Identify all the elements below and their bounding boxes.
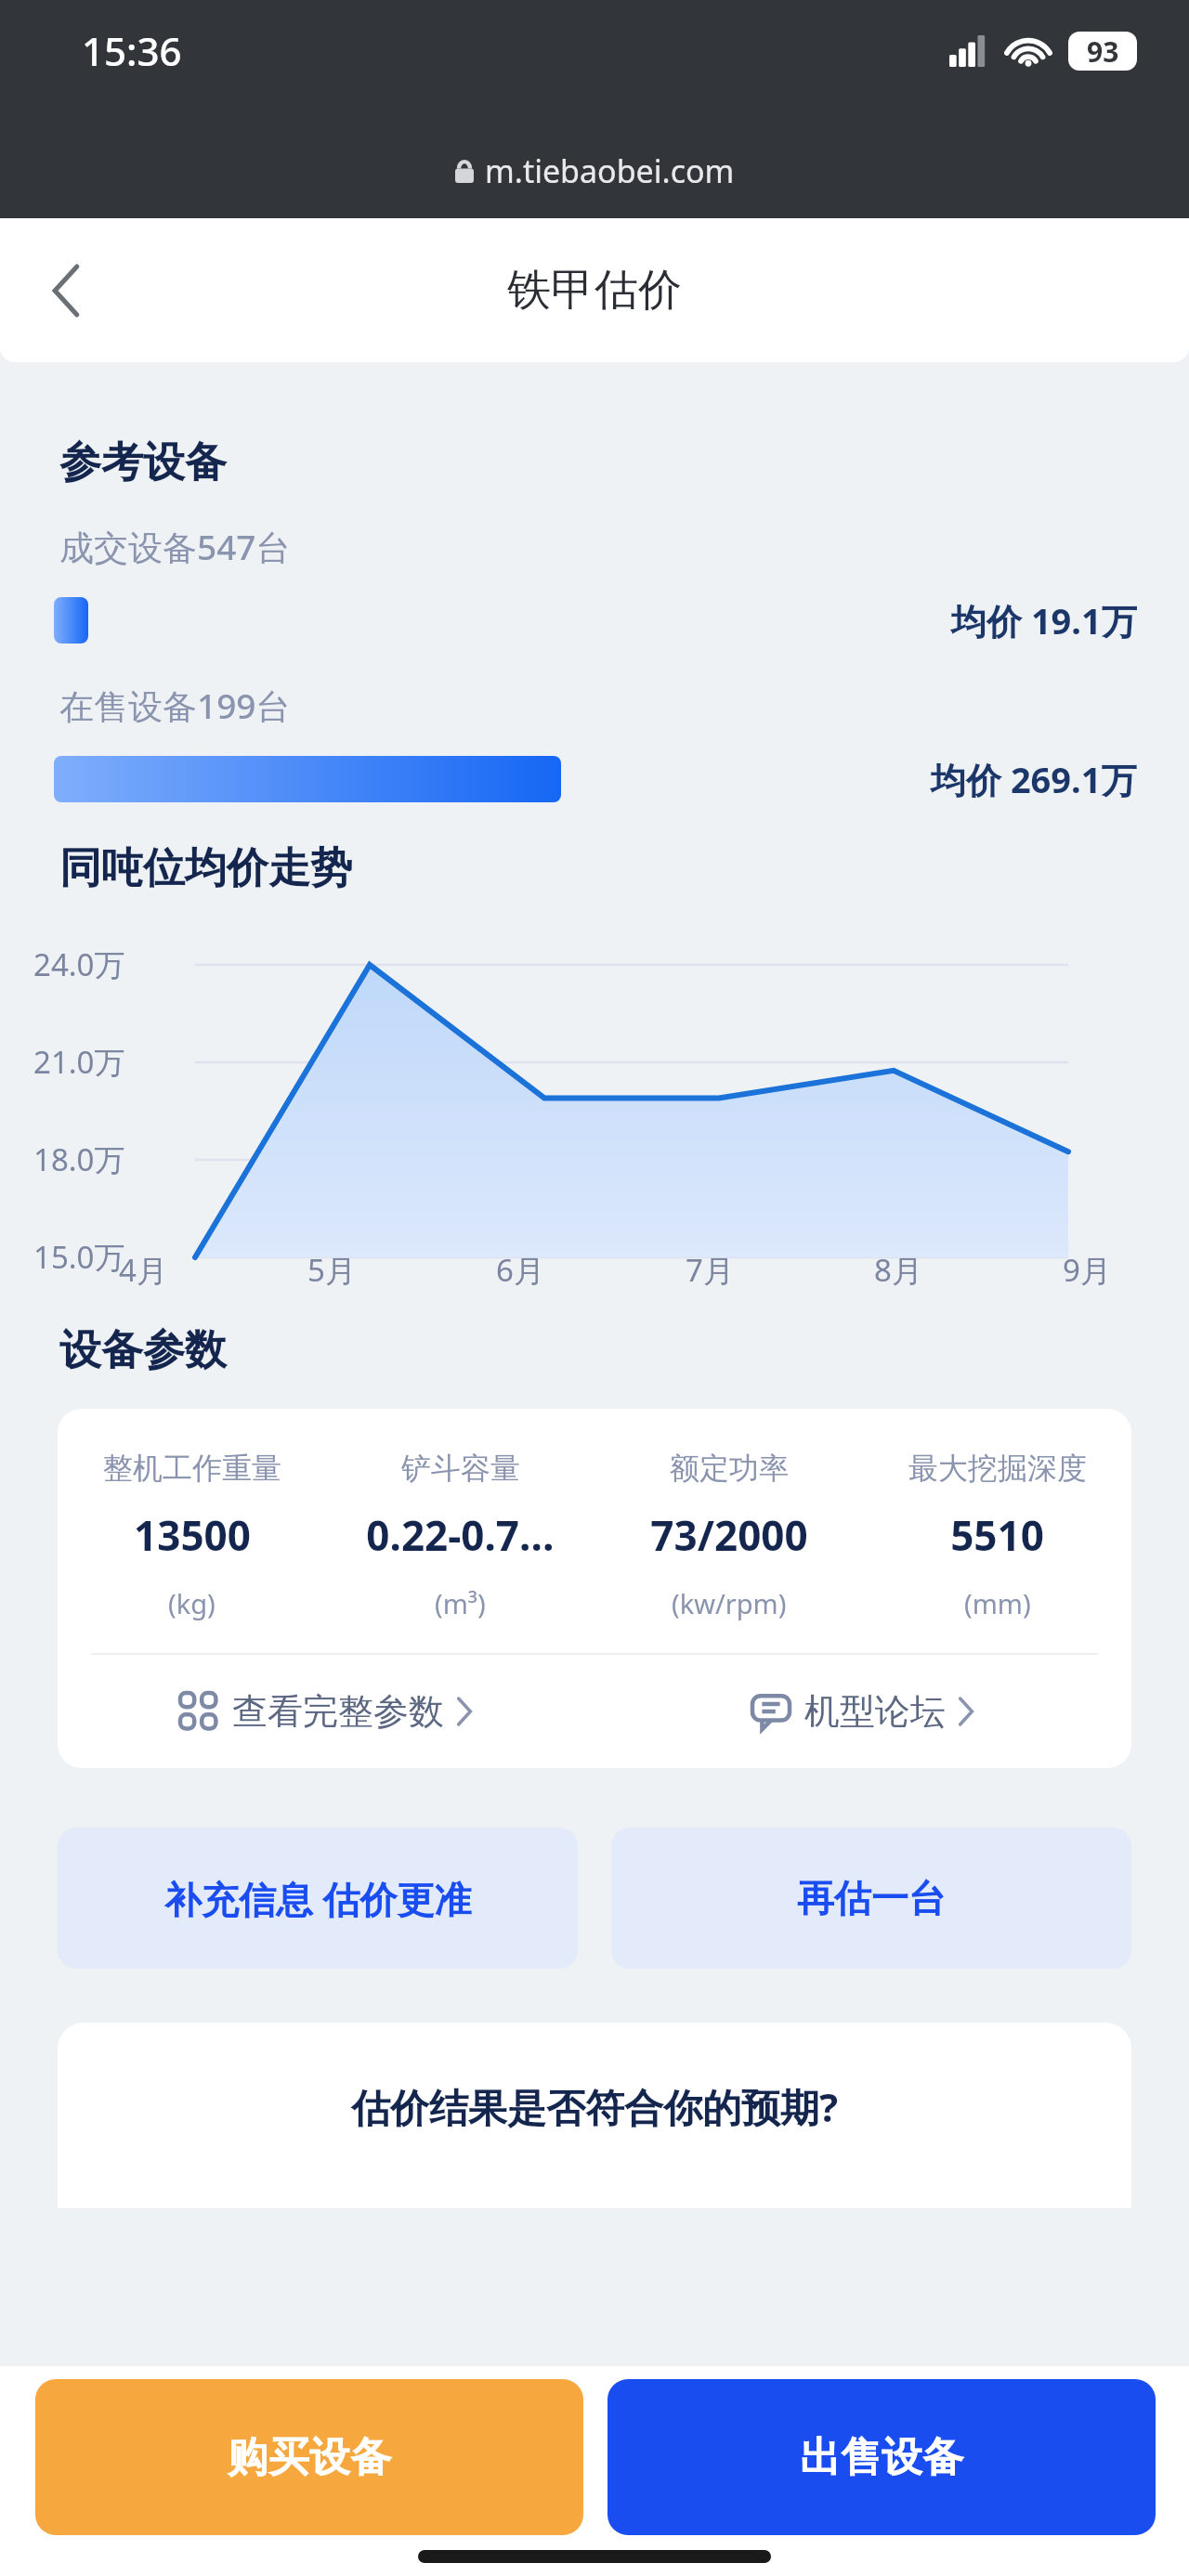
staticText: 估价结果是否符合你的预期? xyxy=(351,2080,839,2133)
staticText: m.tiebaobei.com xyxy=(485,150,735,192)
staticText: (m³) xyxy=(435,1585,486,1621)
staticText: 额定功率 xyxy=(670,1450,789,1487)
staticText: (kw/rpm) xyxy=(672,1585,787,1621)
staticText: 均价 269.1万 xyxy=(931,755,1137,803)
staticText: 9月 xyxy=(1063,1249,1111,1291)
staticText: 再估一台 xyxy=(797,1875,946,1921)
staticText: 93 xyxy=(1087,33,1119,71)
staticText: 补充信息 估价更准 xyxy=(164,1873,472,1924)
staticText: 在售设备199台 xyxy=(59,682,291,729)
button[interactable]: 再估一台 xyxy=(611,1828,1131,1969)
staticText: (mm) xyxy=(964,1585,1031,1621)
button[interactable]: Back xyxy=(30,254,104,328)
staticText: 5月 xyxy=(307,1249,356,1291)
staticText: 73/2000 xyxy=(650,1507,808,1563)
staticText: 5510 xyxy=(950,1507,1044,1563)
button[interactable]: 查看完整参数 xyxy=(58,1655,594,1768)
staticText: 7月 xyxy=(686,1249,734,1291)
staticText: 铲斗容量 xyxy=(401,1450,520,1487)
staticText: 设备参数 xyxy=(59,1324,227,1377)
staticText: 查看完整参数 xyxy=(232,1689,444,1734)
staticText: 整机工作重量 xyxy=(103,1450,281,1487)
staticText: 购买设备 xyxy=(228,2432,391,2483)
staticText: 8月 xyxy=(874,1249,922,1291)
staticText: 成交设备547台 xyxy=(59,523,291,570)
staticText: 15:36 xyxy=(82,24,182,77)
staticText: (kg) xyxy=(168,1585,216,1621)
staticText: 均价 19.1万 xyxy=(951,596,1137,644)
staticText: 21.0万 xyxy=(33,1041,125,1083)
staticText: 同吨位均价走势 xyxy=(59,842,352,895)
staticText: 铁甲估价 xyxy=(507,263,682,318)
staticText: 6月 xyxy=(496,1249,544,1291)
staticText: 24.0万 xyxy=(33,943,125,985)
staticText: 机型论坛 xyxy=(804,1689,946,1734)
button[interactable]: 补充信息 估价更准 xyxy=(58,1828,578,1969)
button[interactable]: 机型论坛 xyxy=(594,1655,1131,1768)
staticText: 出售设备 xyxy=(800,2432,963,2483)
button[interactable]: 购买设备 xyxy=(35,2379,583,2535)
staticText: 4月 xyxy=(119,1249,167,1291)
staticText: 最大挖掘深度 xyxy=(908,1450,1087,1487)
staticText: 15.0万 xyxy=(33,1236,125,1278)
button[interactable]: 出售设备 xyxy=(608,2379,1156,2535)
staticText: 18.0万 xyxy=(33,1138,125,1180)
staticText: 参考设备 xyxy=(59,436,227,489)
staticText: 0.22-0.7… xyxy=(366,1507,555,1563)
staticText: 13500 xyxy=(134,1507,251,1563)
